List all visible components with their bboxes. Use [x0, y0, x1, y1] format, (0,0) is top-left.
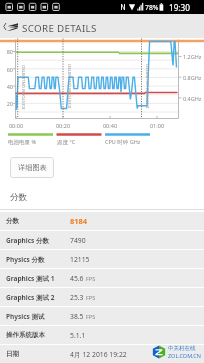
staticText: Graphics 分数 [6, 236, 49, 245]
staticText: 8184 [70, 216, 88, 226]
staticText: 38.5 [70, 312, 84, 321]
staticText: 0.8GHz [183, 74, 204, 81]
button[interactable]: Back [0, 14, 9, 38]
staticText: ICESTORM UNLIMITED [144, 63, 150, 108]
staticText: 01:00 [147, 122, 167, 129]
staticText: 操作系统版本 [6, 331, 45, 339]
staticText: 电池电量 % [8, 138, 54, 146]
button[interactable]: 详细图表 [10, 157, 54, 178]
staticText: 0.4GHz [183, 95, 204, 102]
staticText: 00:40 [100, 122, 120, 129]
staticText: 分数 [10, 192, 27, 203]
button[interactable]: 日期 [0, 345, 204, 363]
button[interactable]: Physics 分数 [0, 250, 204, 268]
staticText: ICESTORM UNLIMITED [20, 64, 26, 109]
staticText: 00:20 [53, 122, 73, 129]
staticText: Graphics 测试 1 [6, 274, 55, 283]
button[interactable]: 操作系统版本 [0, 326, 204, 344]
staticText: 5.1.1 [70, 331, 86, 340]
staticText: 20 [1, 100, 13, 107]
staticText: Physics 分数 [6, 255, 45, 264]
staticText: 78% [145, 3, 159, 12]
staticText: Graphics 测试 2 [6, 293, 55, 302]
staticText: 25.3 [70, 293, 84, 302]
staticText: CPU 时钟 GHz [105, 138, 155, 146]
staticText: ICESTORM UNLIMITED [66, 63, 72, 108]
button[interactable]: Graphics 测试 2 [0, 288, 204, 306]
staticText: 中关村在线 [168, 345, 196, 352]
staticText: 日期 [6, 350, 19, 358]
staticText: 60 [1, 66, 13, 73]
staticText: 45.6 [70, 274, 84, 283]
button[interactable]: Graphics 测试 1 [0, 269, 204, 287]
staticText: 19:30 [169, 2, 190, 13]
staticText: 分数 [6, 217, 19, 225]
staticText: 4月 12 2016 19:22 [70, 350, 127, 359]
staticText: 00:00 [6, 122, 26, 129]
staticText: 7490 [70, 236, 86, 245]
button[interactable]: Graphics 分数 [0, 231, 204, 249]
staticText: FPS [86, 313, 96, 320]
staticText: 40 [1, 83, 13, 90]
staticText: 详细图表 [18, 163, 47, 172]
staticText: 1.2GHz [183, 53, 204, 60]
staticText: SCORE DETAILS [22, 22, 97, 35]
staticText: FPS [86, 275, 96, 282]
staticText: ZOL.COM.CN [168, 352, 201, 359]
staticText: FPS [86, 294, 96, 301]
staticText: Physics 测试 [6, 312, 45, 321]
staticText: 80 [1, 48, 13, 55]
staticText: 12115 [70, 255, 90, 264]
button[interactable]: Physics 测试 [0, 307, 204, 325]
button[interactable]: 分数 [0, 212, 204, 230]
staticText: 温度 °C [57, 138, 103, 146]
